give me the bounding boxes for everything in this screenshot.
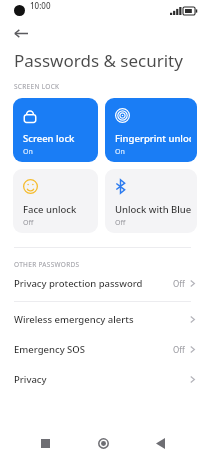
staticText: Screen lock <box>23 132 75 145</box>
button[interactable]: Emergency SOS <box>0 341 205 358</box>
staticText: Face unlock <box>23 203 77 216</box>
button[interactable]: Privacy protection password <box>0 275 205 292</box>
staticText: 10:00 <box>30 0 51 11</box>
staticText: Off <box>115 218 126 228</box>
staticText: On <box>115 147 125 157</box>
staticText: OTHER PASSWORDS <box>14 260 80 269</box>
staticText: Emergency SOS <box>14 343 86 356</box>
staticText: Privacy <box>14 373 47 386</box>
button[interactable]: Back <box>147 430 173 456</box>
staticText: SCREEN LOCK <box>14 82 60 91</box>
staticText: Unlock with Bluetooth <box>115 203 191 216</box>
staticText: Off <box>23 218 34 228</box>
button[interactable]: Fingerprint unlock <box>105 98 197 162</box>
button[interactable]: Face unlock <box>13 169 98 233</box>
staticText: Privacy protection password <box>14 277 143 290</box>
button[interactable]: Wireless emergency alerts <box>0 311 205 328</box>
staticText: Wireless emergency alerts <box>14 313 134 326</box>
button[interactable]: Unlock with Bluetooth <box>105 169 197 233</box>
staticText: Off <box>173 278 185 289</box>
button[interactable]: Privacy <box>0 371 205 388</box>
button[interactable]: Screen lock <box>13 98 98 162</box>
button[interactable]: Recents <box>32 430 58 456</box>
staticText: Off <box>173 344 185 355</box>
button[interactable]: Back <box>9 22 33 44</box>
staticText: Fingerprint unlock <box>115 132 191 145</box>
button[interactable]: Home <box>90 430 116 456</box>
staticText: On <box>23 147 33 157</box>
staticText: Passwords & security <box>14 49 183 72</box>
